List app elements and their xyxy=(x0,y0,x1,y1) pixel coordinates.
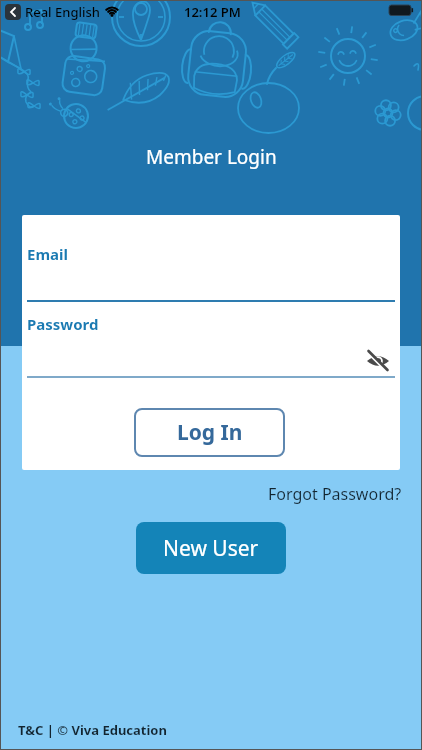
staticText: New User xyxy=(163,534,259,563)
button[interactable]: Forgot Password? xyxy=(268,483,402,505)
staticText: 12:12 PM xyxy=(184,3,241,21)
staticText: Log In xyxy=(177,418,243,447)
button[interactable]: Password xyxy=(27,314,99,334)
button[interactable]: T&C | © Viva Education xyxy=(18,721,167,739)
button[interactable] xyxy=(366,349,390,373)
staticText: Member Login xyxy=(146,144,277,170)
button[interactable]: Real English xyxy=(25,3,100,21)
button[interactable]: New User xyxy=(136,522,286,574)
button[interactable]: Email xyxy=(27,244,68,264)
button[interactable]: Log In xyxy=(134,408,285,457)
